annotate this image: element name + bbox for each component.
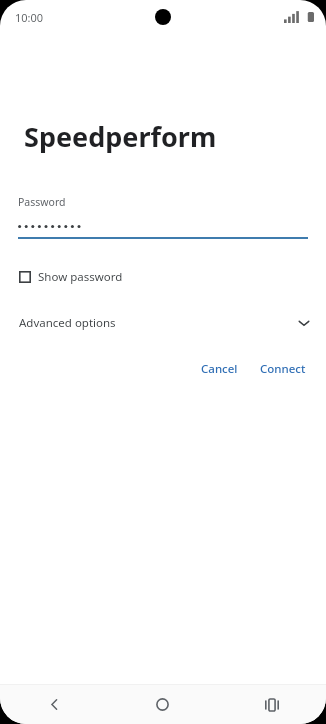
staticText: Connect <box>260 361 306 377</box>
button[interactable]: Back <box>0 685 108 724</box>
staticText: Cancel <box>201 361 238 377</box>
staticText: Speedperform <box>24 118 217 155</box>
button[interactable]: Advanced options <box>0 311 326 335</box>
other: Expand advanced options <box>297 316 311 330</box>
button[interactable]: Home <box>108 685 217 724</box>
staticText: Password <box>18 195 66 209</box>
staticText: Advanced options <box>19 315 116 331</box>
button[interactable]: Recent apps <box>217 685 326 724</box>
staticText: Show password <box>38 269 123 285</box>
button[interactable]: Connect <box>252 355 314 383</box>
button[interactable]: Cancel <box>193 355 246 383</box>
button[interactable]: Show password <box>0 265 326 289</box>
staticText: 10:00 <box>15 10 44 25</box>
